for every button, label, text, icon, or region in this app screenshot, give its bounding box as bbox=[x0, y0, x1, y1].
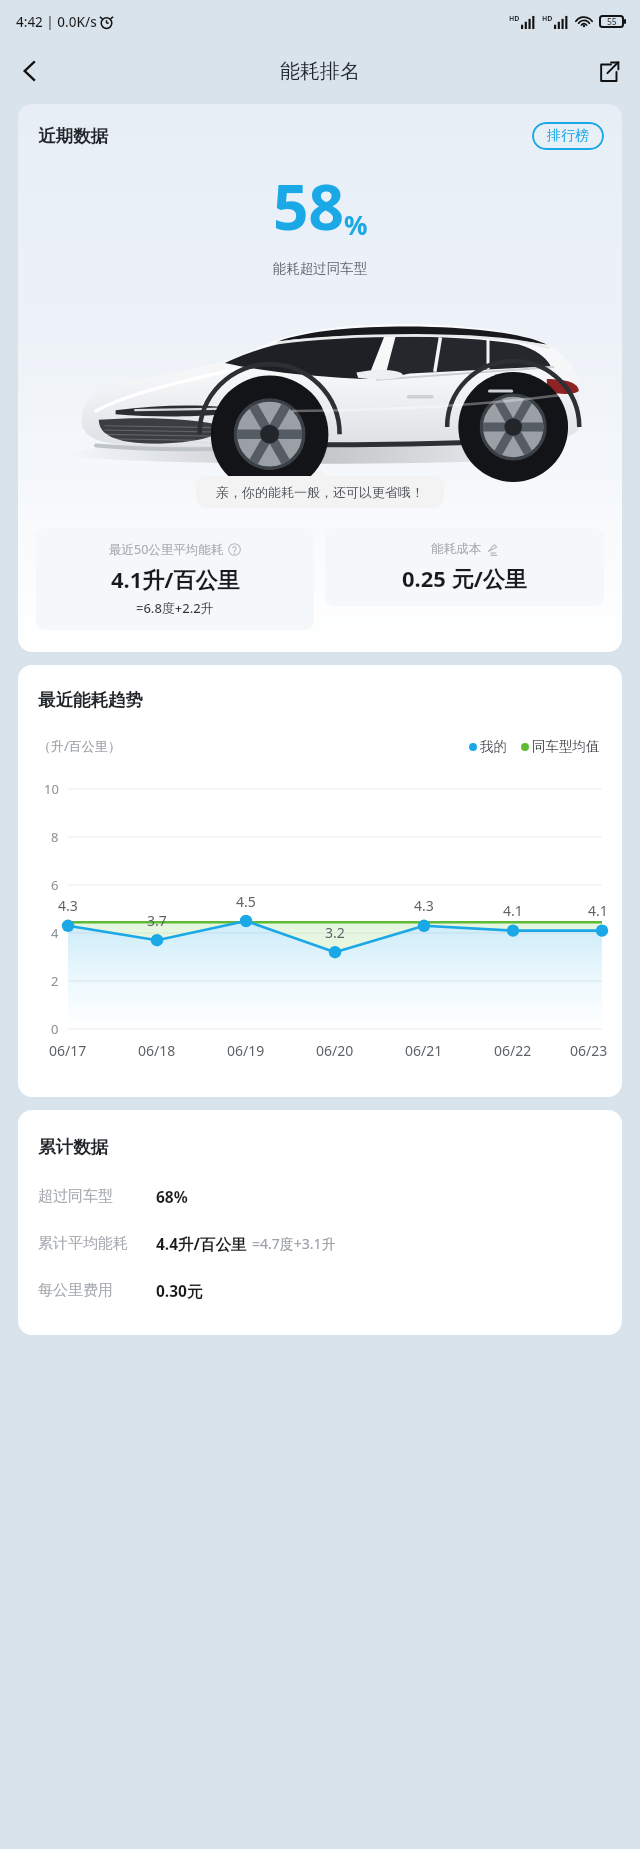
staticText: 06/23 bbox=[570, 1041, 608, 1060]
staticText: 累计数据 bbox=[38, 1136, 108, 1158]
button[interactable]: 最近50公里平均能耗 bbox=[36, 528, 314, 630]
staticText: 58 bbox=[273, 164, 344, 248]
staticText: 55 bbox=[607, 16, 617, 28]
staticText: 06/17 bbox=[49, 1041, 87, 1060]
button[interactable]: 超过同车型 bbox=[38, 1186, 602, 1207]
button[interactable]: 每公里费用 bbox=[38, 1280, 602, 1301]
staticText: 68% bbox=[156, 1186, 188, 1207]
button[interactable]: Back bbox=[6, 47, 54, 95]
button[interactable]: Share bbox=[584, 47, 632, 95]
staticText: % bbox=[344, 207, 368, 242]
staticText: 每公里费用 bbox=[38, 1281, 113, 1300]
staticText: 超过同车型 bbox=[38, 1187, 113, 1206]
staticText: 4.4升/百公里 bbox=[156, 1233, 247, 1254]
staticText: 4:42 | 0.0K/s bbox=[16, 13, 97, 31]
staticText: 排行榜 bbox=[547, 127, 589, 145]
staticText: 06/21 bbox=[405, 1041, 443, 1060]
staticText: 能耗超过同车型 bbox=[18, 260, 622, 277]
staticText: 06/22 bbox=[494, 1041, 532, 1060]
staticText: 最近50公里平均能耗 bbox=[109, 541, 224, 558]
staticText: 06/18 bbox=[138, 1041, 176, 1060]
staticText: 4 bbox=[51, 924, 59, 942]
staticText: 0 bbox=[51, 1020, 59, 1038]
button[interactable]: 能耗成本 bbox=[325, 528, 604, 606]
staticText: 2 bbox=[51, 972, 59, 990]
staticText: 10 bbox=[44, 780, 59, 798]
staticText: 4.1 bbox=[503, 901, 523, 920]
staticText: 4.5 bbox=[236, 892, 256, 911]
staticText: =4.7度+3.1升 bbox=[252, 1234, 336, 1253]
staticText: 4.3 bbox=[414, 896, 434, 915]
staticText: 3.7 bbox=[147, 911, 167, 930]
staticText: HD bbox=[542, 14, 553, 24]
staticText: 近期数据 bbox=[38, 125, 108, 147]
staticText: 亲，你的能耗一般，还可以更省哦！ bbox=[216, 484, 424, 500]
staticText: 累计平均能耗 bbox=[38, 1234, 128, 1253]
staticText: 8 bbox=[51, 828, 59, 846]
staticText: 能耗成本 bbox=[431, 541, 481, 557]
staticText: HD bbox=[509, 14, 520, 24]
staticText: （升/百公里） bbox=[38, 737, 121, 755]
staticText: 4.1 bbox=[588, 901, 608, 920]
staticText: 4.3 bbox=[58, 896, 78, 915]
staticText: =6.8度+2.2升 bbox=[136, 599, 214, 617]
staticText: 0.30元 bbox=[156, 1280, 203, 1301]
staticText: 06/19 bbox=[227, 1041, 265, 1060]
staticText: 我的 bbox=[480, 738, 507, 755]
button[interactable]: 累计平均能耗 bbox=[38, 1233, 602, 1254]
staticText: 6 bbox=[51, 876, 59, 894]
staticText: 0.25 元/公里 bbox=[402, 563, 527, 593]
staticText: 同车型均值 bbox=[532, 738, 600, 755]
staticText: 06/20 bbox=[316, 1041, 354, 1060]
staticText: 能耗排名 bbox=[280, 59, 360, 84]
staticText: 4.1升/百公里 bbox=[111, 564, 240, 594]
button[interactable]: 排行榜 bbox=[532, 122, 604, 150]
staticText: 3.2 bbox=[325, 923, 345, 942]
staticText: 最近能耗趋势 bbox=[38, 689, 143, 711]
